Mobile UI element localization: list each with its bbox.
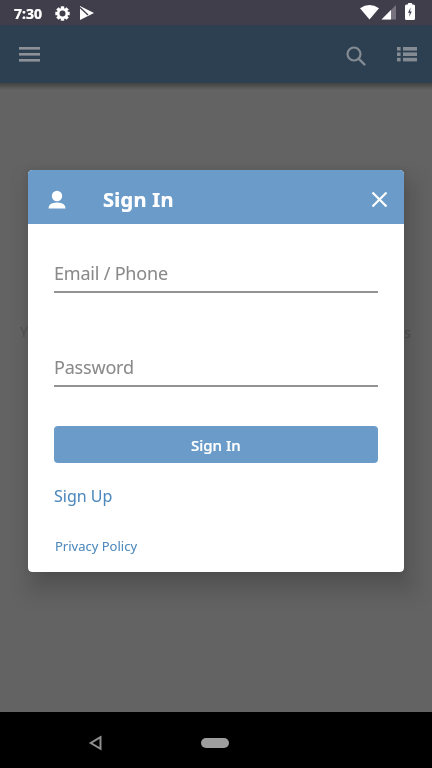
button[interactable] [338,38,374,74]
staticText: Sign Up [54,485,113,507]
button[interactable]: Password [54,354,378,390]
staticText: Email / Phone [54,261,168,286]
button[interactable]: Email / Phone [54,260,378,296]
staticText: Password [54,355,134,380]
staticText: Privacy Policy [55,537,138,555]
staticText: Sign In [191,435,241,455]
staticText: Y [20,322,28,341]
button[interactable]: Sign In [54,426,378,463]
staticText: Sign In [103,186,174,213]
button[interactable] [389,36,425,72]
button[interactable]: Sign Up [54,485,113,507]
button[interactable]: Privacy Policy [55,537,138,555]
button[interactable] [201,738,229,748]
button[interactable] [361,181,397,217]
button[interactable] [11,36,47,72]
staticText: s [404,323,411,342]
staticText: 7:30 [14,4,42,23]
button[interactable] [79,727,111,759]
